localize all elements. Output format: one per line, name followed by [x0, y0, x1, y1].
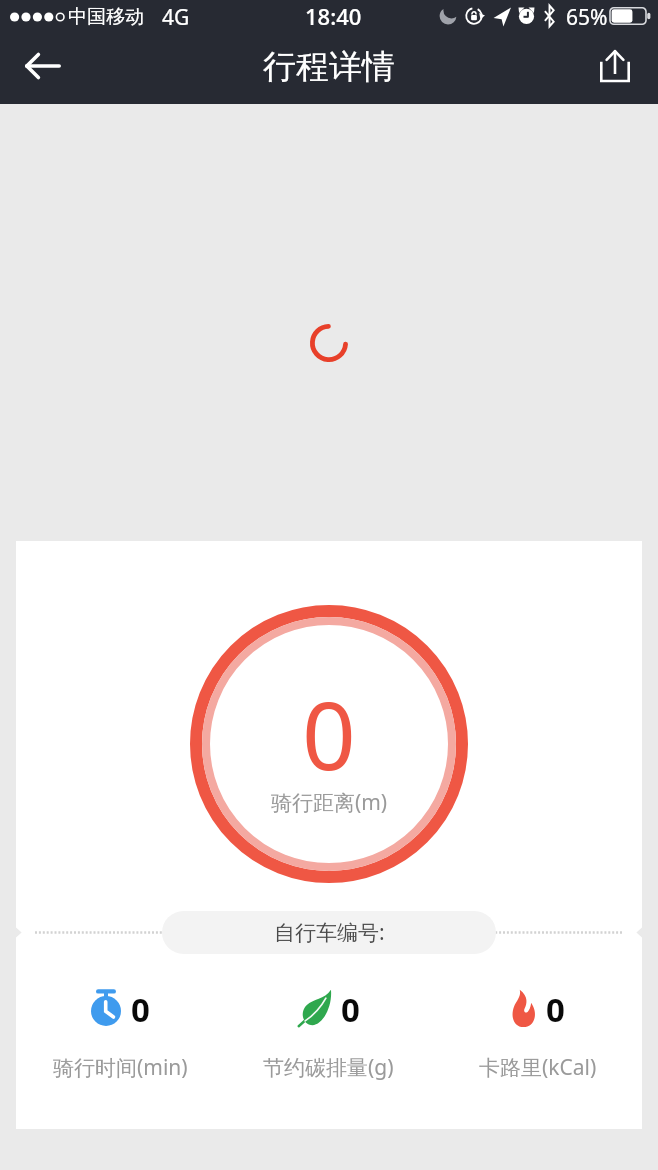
button[interactable]: Share	[586, 36, 658, 104]
button[interactable]: 自行车编号:	[162, 911, 496, 954]
staticText: 自行车编号:	[274, 918, 385, 947]
staticText: 中国移动	[68, 5, 144, 29]
staticText: 0	[287, 670, 371, 798]
staticText: 节约碳排量(g)	[263, 1053, 394, 1082]
staticText: 18:40	[305, 1, 362, 31]
staticText: 骑行距离(m)	[190, 788, 468, 817]
button[interactable]: 0	[224, 979, 433, 1082]
staticText: 65%	[566, 3, 608, 32]
button[interactable]: 0	[433, 979, 642, 1082]
staticText: 4G	[162, 3, 190, 32]
staticText: 0	[341, 987, 360, 1029]
staticText: 0	[546, 987, 565, 1029]
staticText: 骑行时间(min)	[53, 1053, 188, 1082]
staticText: 行程详情	[263, 46, 395, 88]
button[interactable]: Back	[0, 36, 86, 104]
staticText: 卡路里(kCal)	[479, 1053, 597, 1082]
button[interactable]: 0	[16, 979, 224, 1082]
staticText: 0	[131, 987, 150, 1029]
